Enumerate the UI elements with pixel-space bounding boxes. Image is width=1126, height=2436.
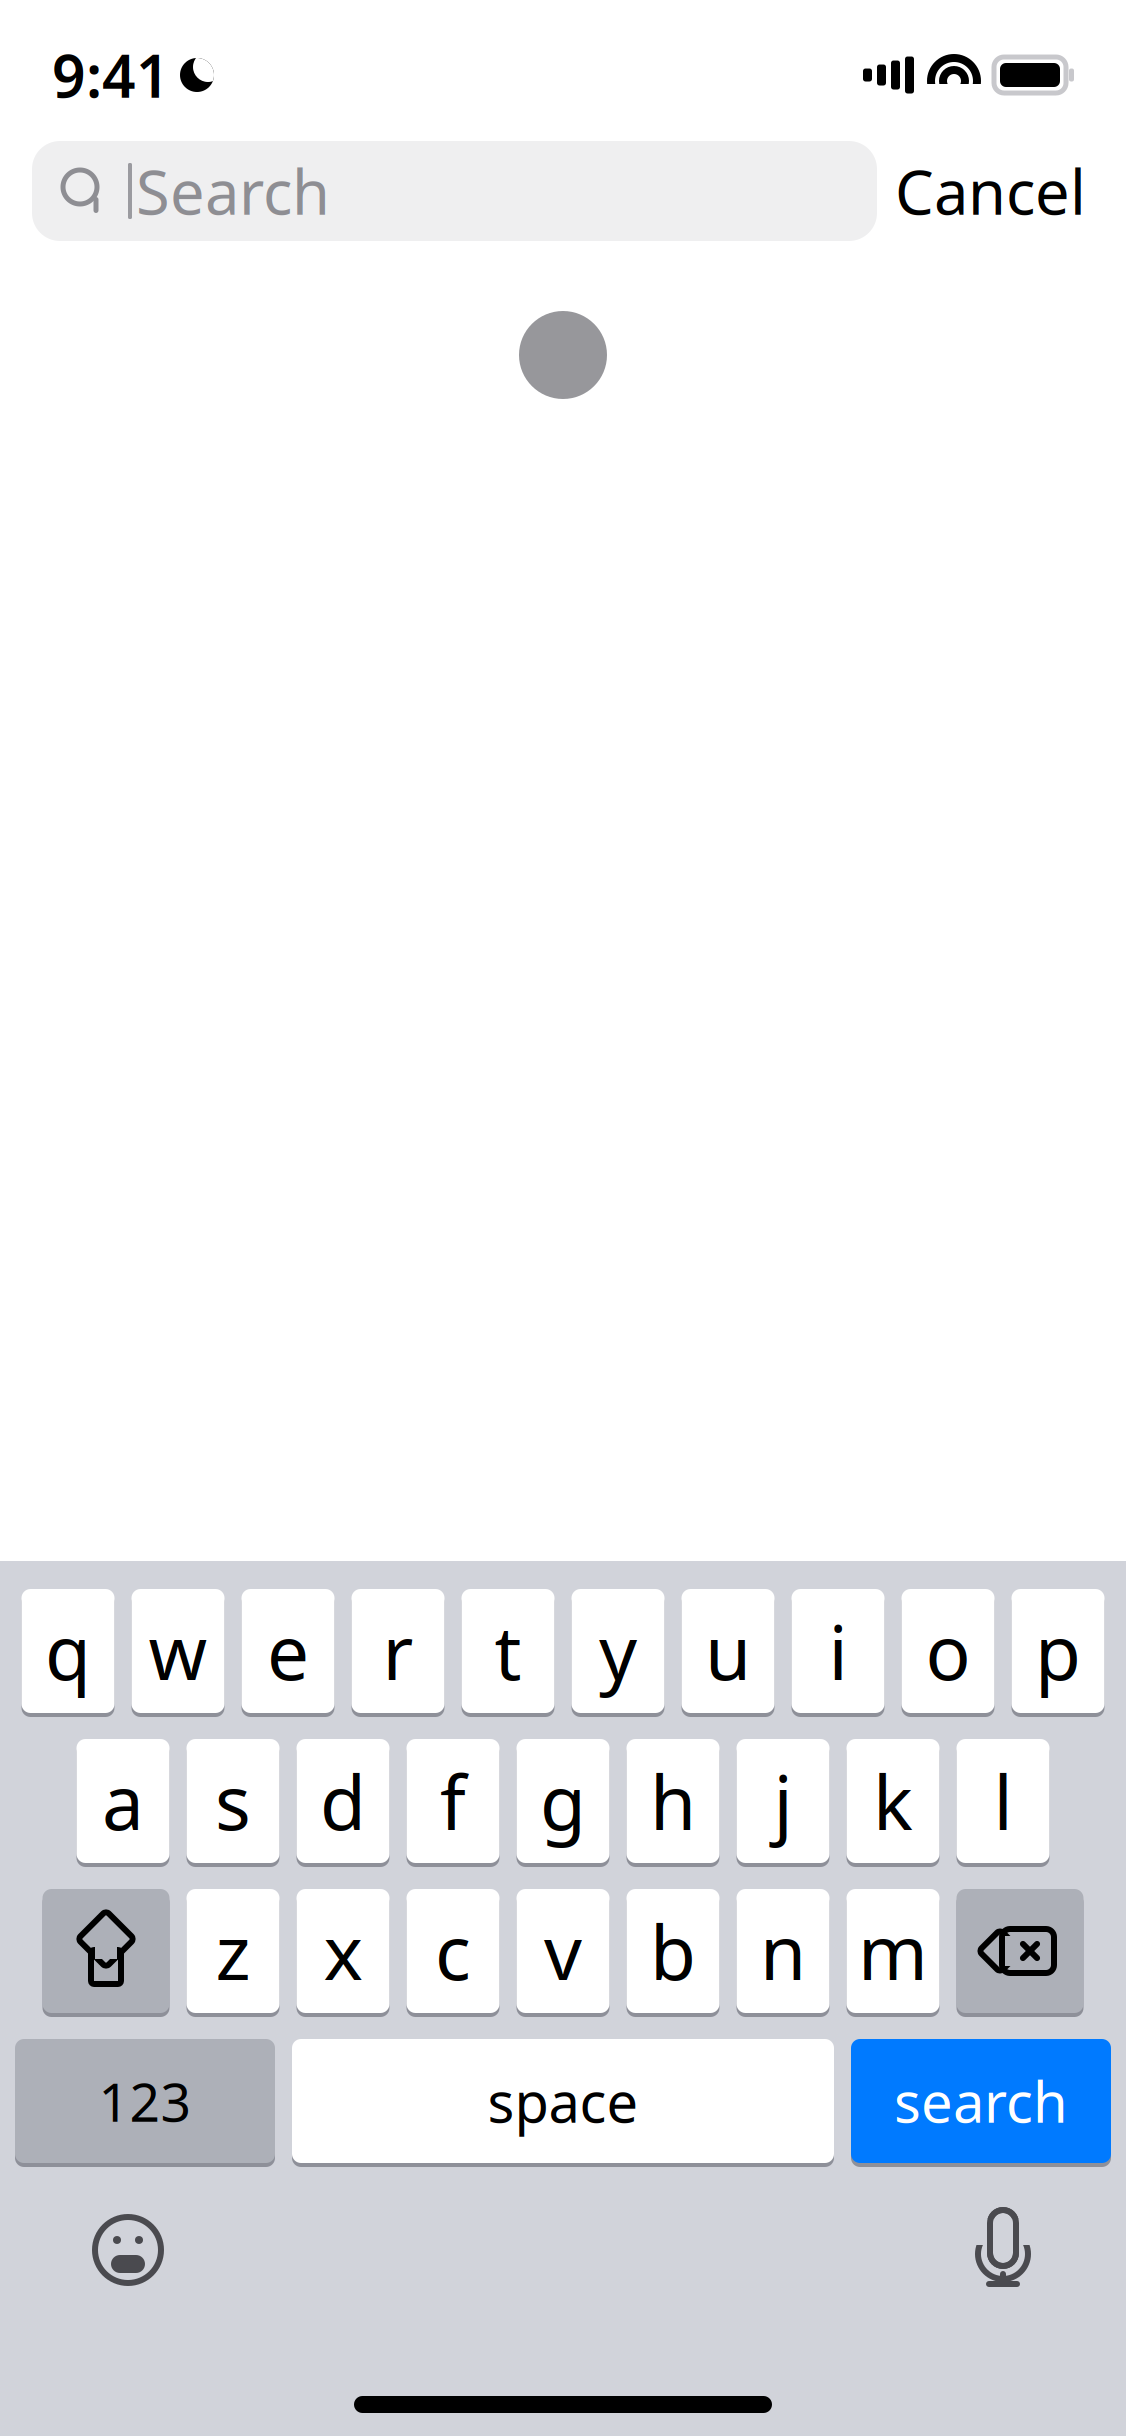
button[interactable]: d [296,1737,389,1865]
button[interactable]: g [516,1737,609,1865]
button[interactable]: e [241,1587,334,1715]
button[interactable]: space [292,2037,834,2165]
staticText: q [45,1601,91,1701]
button[interactable]: x [296,1887,389,2015]
staticText: f [440,1751,466,1851]
button[interactable]: search [851,2037,1111,2165]
button[interactable]: s [186,1737,279,1865]
staticText: 123 [98,2066,191,2136]
button[interactable]: n [736,1887,829,2015]
staticText: t [494,1601,521,1701]
button[interactable]: j [736,1737,829,1865]
button[interactable]: b [626,1887,719,2015]
staticText: v [544,1901,582,2001]
button[interactable]: y [571,1587,664,1715]
staticText: o [925,1601,970,1701]
button[interactable]: q [21,1587,114,1715]
staticText: 9:41 [52,36,170,114]
button[interactable]: m [846,1887,939,2015]
staticText: z [215,1901,250,2001]
staticText: Cancel [895,150,1086,232]
button[interactable]: 123 [15,2037,275,2165]
staticText: d [320,1751,366,1851]
button[interactable]: k [846,1737,939,1865]
button[interactable]: z [186,1887,279,2015]
button[interactable]: o [901,1587,994,1715]
button[interactable]: Cancel [885,134,1096,248]
staticText: j [773,1751,792,1851]
staticText: w [148,1601,207,1701]
staticText: m [858,1901,928,2001]
staticText: y [599,1601,637,1701]
staticText: k [873,1751,913,1851]
button[interactable]: v [516,1887,609,2015]
staticText: h [650,1751,696,1851]
button[interactable]: c [406,1887,499,2015]
staticText: g [540,1751,586,1851]
staticText: e [267,1601,309,1701]
button[interactable]: l [956,1737,1049,1865]
button[interactable]: f [406,1737,499,1865]
staticText: l [993,1751,1012,1851]
button[interactable]: i [791,1587,884,1715]
button[interactable]: Dictation [952,2197,1054,2303]
button[interactable]: a [76,1737,169,1865]
staticText: a [102,1751,144,1851]
button[interactable]: Shift [42,1887,169,2015]
button[interactable]: Delete [956,1887,1083,2015]
staticText: i [828,1601,847,1701]
button[interactable]: u [681,1587,774,1715]
button[interactable]: Emoji [72,2202,184,2298]
button[interactable]: r [351,1587,444,1715]
staticText: u [705,1601,751,1701]
button[interactable]: w [131,1587,224,1715]
button[interactable]: p [1011,1587,1104,1715]
staticText: r [382,1601,413,1701]
staticText: s [215,1751,251,1851]
button[interactable]: h [626,1737,719,1865]
staticText: search [894,2064,1068,2138]
staticText: c [435,1901,471,2001]
staticText: Search [136,150,330,232]
staticText: p [1035,1601,1081,1701]
button[interactable]: t [461,1587,554,1715]
button[interactable]: Search [32,141,877,241]
staticText: n [760,1901,806,2001]
staticText: space [487,2064,638,2138]
staticText: x [323,1901,362,2001]
staticText: b [650,1901,696,2001]
